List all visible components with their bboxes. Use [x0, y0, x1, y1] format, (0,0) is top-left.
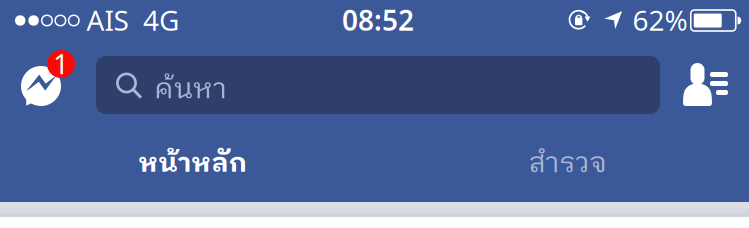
button[interactable]: สำรวจ: [381, 135, 749, 193]
button[interactable]: หน้าหลัก: [6, 135, 380, 193]
button[interactable]: ค้นหา: [96, 56, 660, 114]
staticText: สำรวจ: [528, 141, 607, 187]
button[interactable]: Messenger: [14, 50, 76, 110]
staticText: 62%: [632, 1, 687, 39]
staticText: 4G: [143, 1, 179, 39]
staticText: AIS: [86, 1, 128, 39]
staticText: ค้นหา: [154, 67, 227, 113]
staticText: หน้าหลัก: [138, 142, 247, 186]
staticText: 08:52: [342, 1, 414, 39]
button[interactable]: Friend requests: [673, 55, 739, 113]
staticText: 1: [53, 45, 69, 82]
